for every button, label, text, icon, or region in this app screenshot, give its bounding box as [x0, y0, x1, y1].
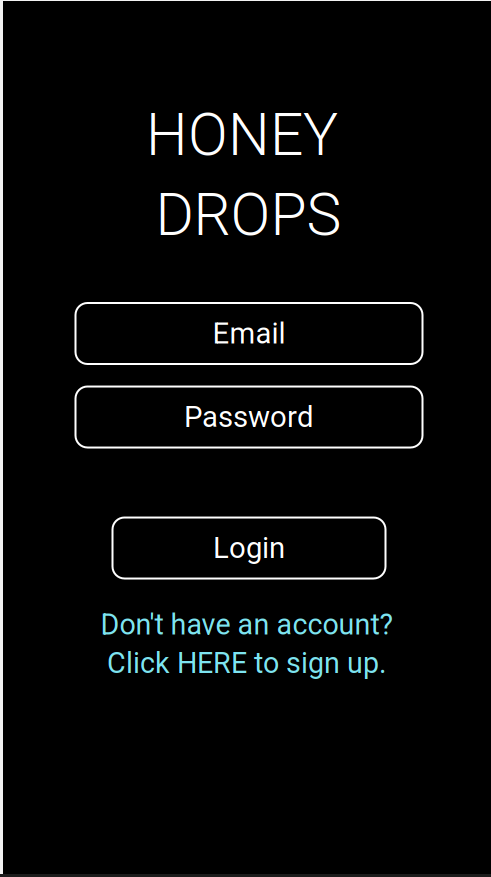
staticText: Click HERE to sign up.	[107, 646, 387, 680]
staticText: DROPS	[155, 181, 341, 249]
staticText: Password	[184, 400, 314, 434]
button[interactable]: Login	[112, 517, 385, 578]
button[interactable]: Don't have an account?	[100, 608, 393, 680]
button[interactable]: Password	[75, 386, 422, 447]
staticText: HONEY	[146, 101, 338, 169]
staticText: Email	[212, 316, 285, 351]
staticText: Login	[213, 531, 285, 565]
button[interactable]: Email	[75, 303, 422, 364]
staticText: Don't have an account?	[100, 608, 393, 641]
